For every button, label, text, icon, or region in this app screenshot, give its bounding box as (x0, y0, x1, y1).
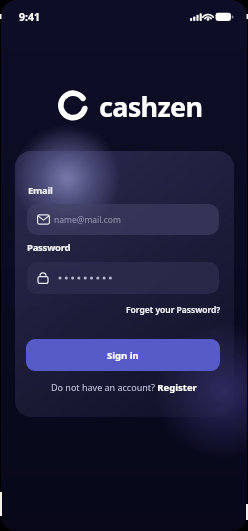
staticText: Sign in (107, 349, 139, 362)
button[interactable]: Forget your Password? (121, 303, 221, 317)
staticText: 9:41 (19, 10, 40, 24)
staticText: cashzen (99, 88, 203, 125)
button[interactable]: Sign in (26, 339, 220, 371)
button[interactable]: name@mail.com (27, 204, 219, 235)
staticText: Forget your Password? (126, 304, 221, 316)
staticText: Password (27, 241, 71, 254)
staticText: Email (28, 184, 53, 197)
button[interactable]: Do not have an account? Register (1, 381, 247, 394)
staticText: Do not have an account? Register (51, 381, 197, 394)
staticText: name@mail.com (54, 214, 121, 226)
button[interactable] (27, 262, 219, 294)
